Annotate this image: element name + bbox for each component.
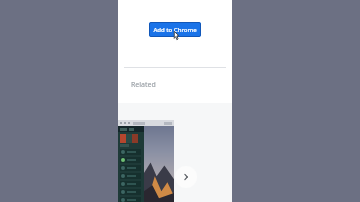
button[interactable]: Add to Chrome [149,22,201,37]
button[interactable] [118,120,174,202]
staticText: Related [131,80,156,90]
button[interactable]: Next [175,166,197,188]
staticText: Add to Chrome [153,26,197,34]
